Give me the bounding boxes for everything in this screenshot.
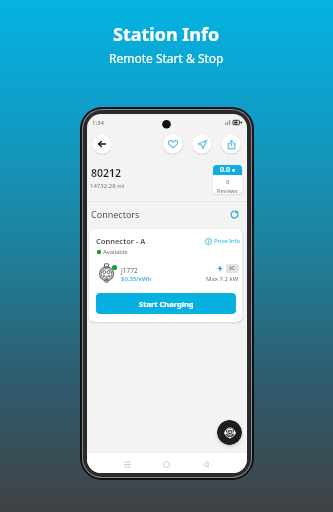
staticText: J1772 <box>121 266 138 275</box>
staticText: 80212 <box>91 166 122 180</box>
staticText: 0.0 <box>220 165 230 175</box>
staticText: Start Charging <box>139 299 194 309</box>
button[interactable]: Start Charging <box>96 293 236 314</box>
staticText: 14732.28 mi <box>90 182 125 190</box>
staticText: AC <box>229 265 236 272</box>
button[interactable]: Directions <box>192 134 212 154</box>
staticText: Reviews <box>217 187 238 194</box>
staticText: 0 <box>226 178 230 186</box>
staticText: 1:34 <box>92 119 104 127</box>
button[interactable]: Home <box>160 458 173 471</box>
button[interactable]: Recent apps <box>121 458 134 471</box>
button[interactable]: Share <box>221 134 241 154</box>
staticText: $0.35/kWh <box>121 275 152 283</box>
staticText: Connector - A <box>96 236 146 246</box>
staticText: Available <box>103 248 128 256</box>
staticText: Remote Start & Stop <box>109 50 224 66</box>
staticText: Price Info <box>214 237 241 245</box>
button[interactable]: Refresh <box>227 207 241 221</box>
button[interactable]: Back <box>199 458 212 471</box>
staticText: Max 7.2 kW <box>206 275 239 283</box>
button[interactable]: Add to favourites <box>163 134 183 154</box>
button[interactable]: 0.0 <box>213 165 242 194</box>
button[interactable]: Customer support <box>217 420 242 445</box>
staticText: Connectors <box>91 208 140 220</box>
staticText: Station Info <box>113 22 220 47</box>
button[interactable]: Back <box>92 134 112 154</box>
button[interactable]: Price Info <box>205 237 241 245</box>
